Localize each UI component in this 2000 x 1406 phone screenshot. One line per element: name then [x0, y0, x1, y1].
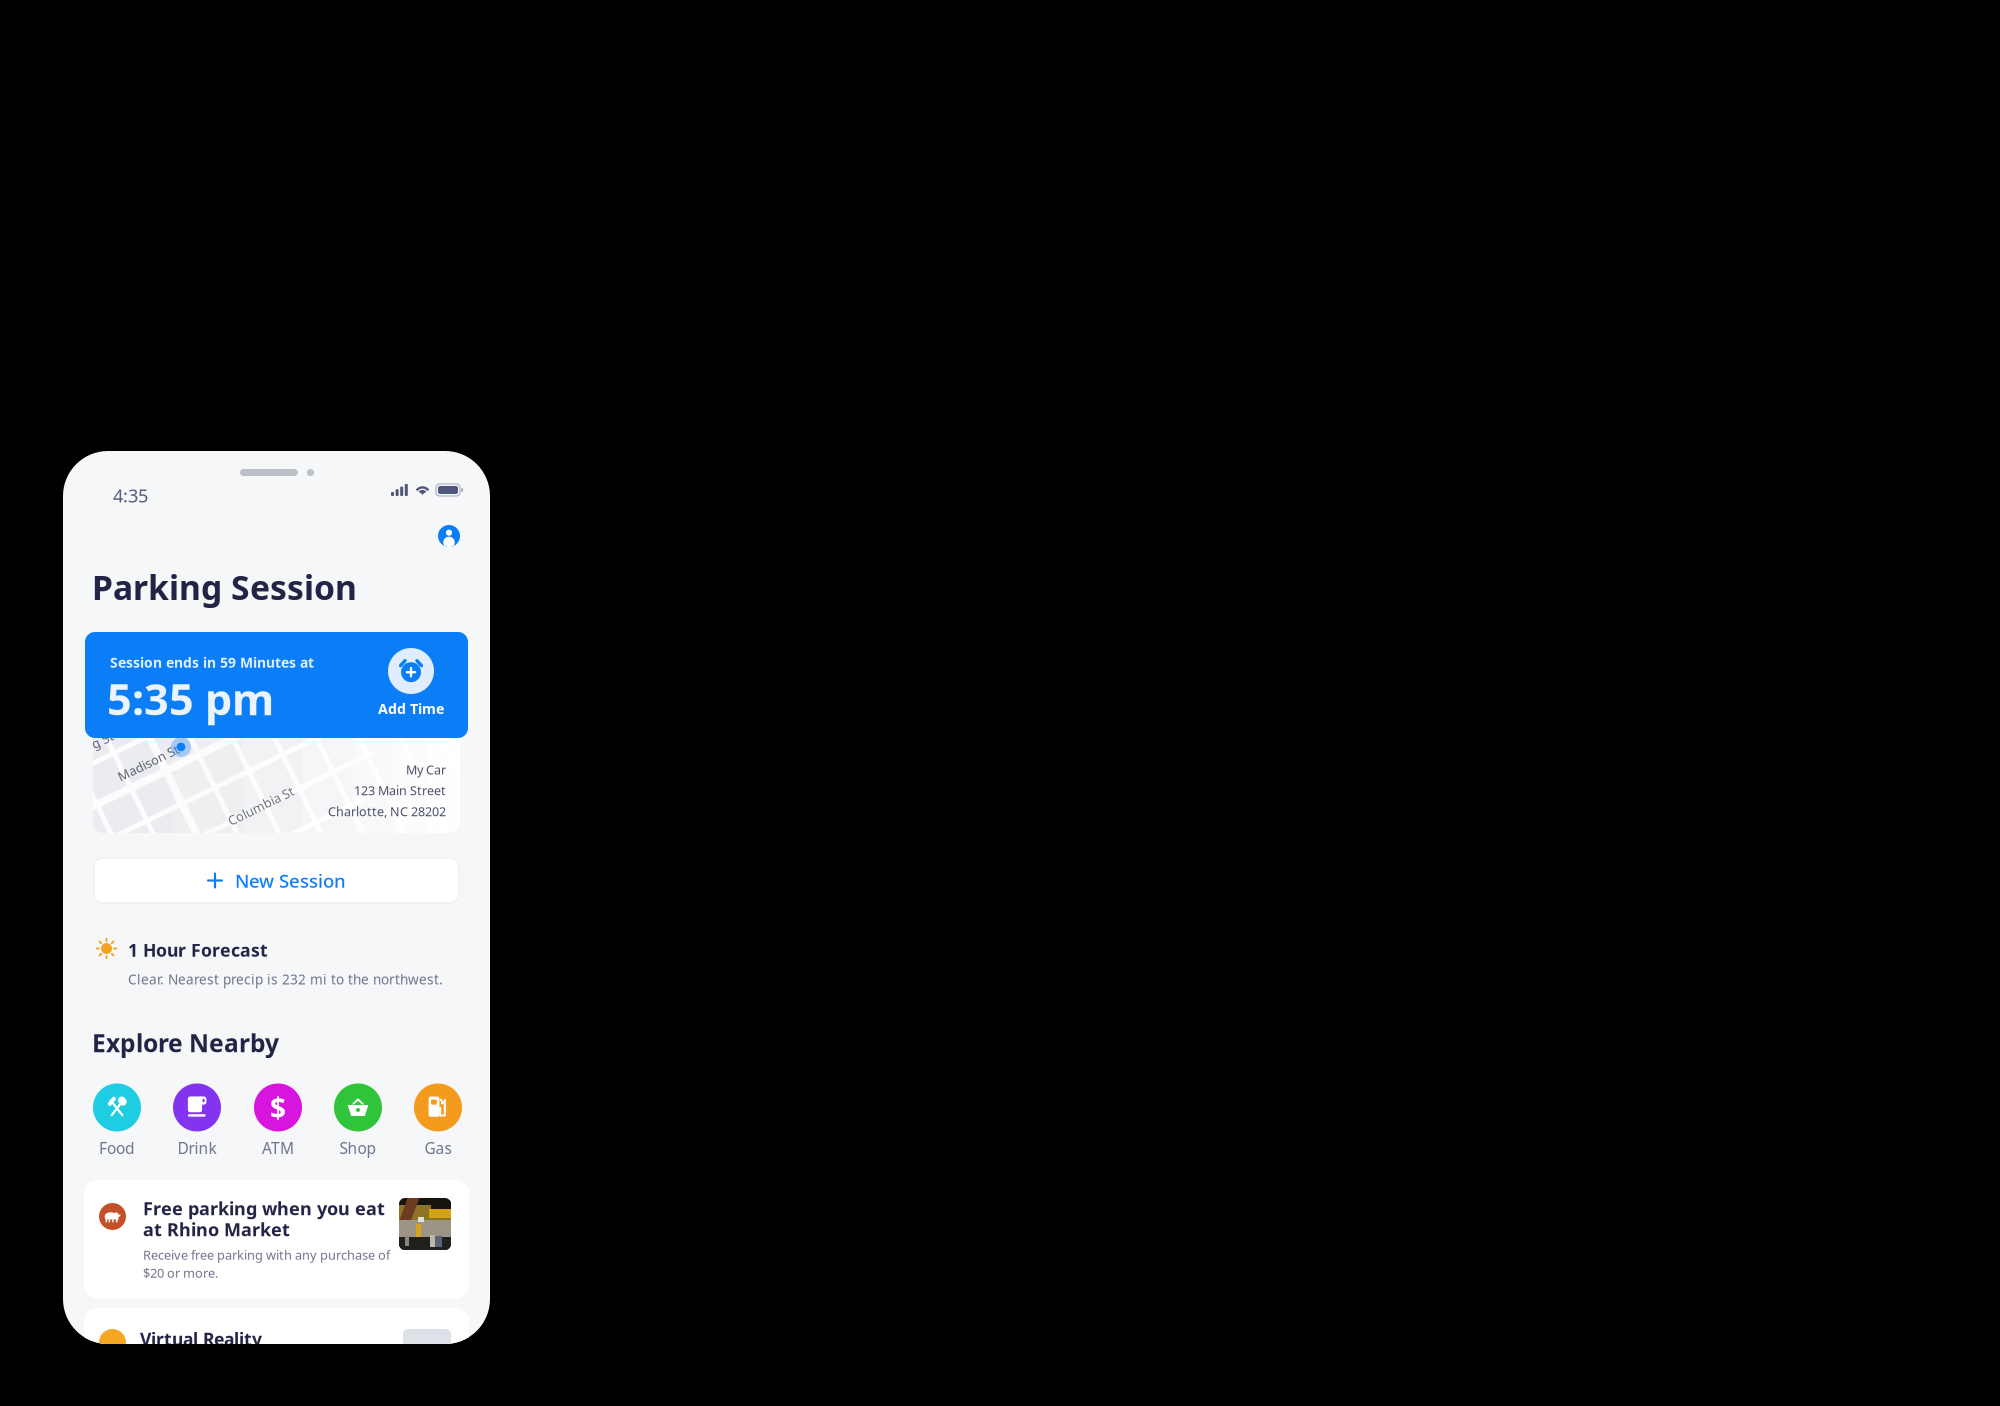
- button[interactable]: Virtual Reality: [84, 1308, 469, 1406]
- button[interactable]: Session ends in 59 Minutes at: [85, 632, 468, 738]
- staticText: Parking Session: [92, 564, 357, 610]
- button[interactable]: Drink: [161, 1081, 233, 1161]
- staticText: Shop: [339, 1137, 376, 1159]
- staticText: New Session: [235, 868, 346, 893]
- staticText: g St: [91, 731, 114, 748]
- button[interactable]: Gas: [402, 1081, 474, 1161]
- staticText: Free parking when you eat: [143, 1196, 385, 1220]
- staticText: Receive free parking with any purchase o…: [143, 1246, 390, 1263]
- staticText: Gas: [424, 1137, 451, 1159]
- staticText: 123 Main Street: [354, 782, 446, 799]
- staticText: Madison St: [115, 754, 182, 771]
- button[interactable]: Free parking when you eat: [84, 1180, 469, 1298]
- staticText: ATM: [262, 1137, 294, 1159]
- staticText: at Rhino Market: [143, 1217, 290, 1241]
- staticText: $20 or more.: [143, 1264, 218, 1281]
- button[interactable]: $: [242, 1081, 314, 1161]
- staticText: Virtual Reality: [140, 1327, 262, 1351]
- staticText: $: [270, 1088, 286, 1126]
- staticText: Session ends in 59 Minutes at: [110, 653, 314, 672]
- button[interactable]: Shop: [322, 1081, 394, 1161]
- button[interactable]: New Session: [94, 858, 459, 903]
- staticText: Charlotte, NC 28202: [328, 803, 446, 820]
- staticText: Explore Nearby: [92, 1026, 279, 1059]
- button[interactable]: Food: [81, 1081, 153, 1161]
- staticText: Columbia St: [225, 797, 297, 814]
- staticText: Clear. Nearest precip is 232 mi to the n…: [128, 970, 443, 988]
- staticText: 1 Hour Forecast: [128, 938, 268, 962]
- staticText: Food: [99, 1137, 135, 1159]
- staticText: 5:35 pm: [107, 669, 274, 728]
- staticText: Drink: [177, 1137, 216, 1159]
- staticText: Add Time: [378, 699, 444, 718]
- staticText: 4:35: [113, 483, 148, 508]
- staticText: My Car: [406, 761, 446, 778]
- button[interactable]: Account: [438, 525, 460, 547]
